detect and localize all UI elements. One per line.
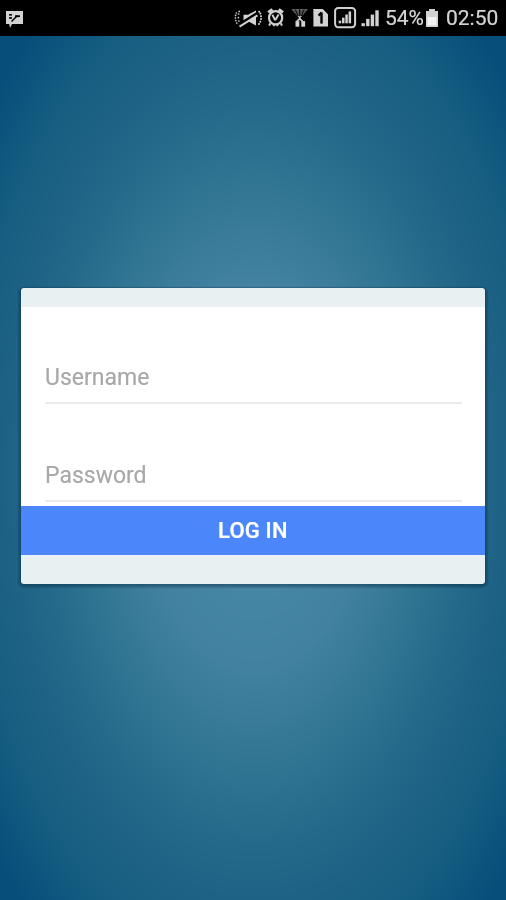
- staticText: 02:50: [446, 6, 499, 31]
- staticText: Password: [45, 462, 147, 489]
- staticText: Username: [45, 364, 150, 391]
- staticText: 54%: [385, 6, 424, 31]
- button[interactable]: LOG IN: [21, 506, 485, 555]
- staticText: LOG IN: [218, 518, 288, 544]
